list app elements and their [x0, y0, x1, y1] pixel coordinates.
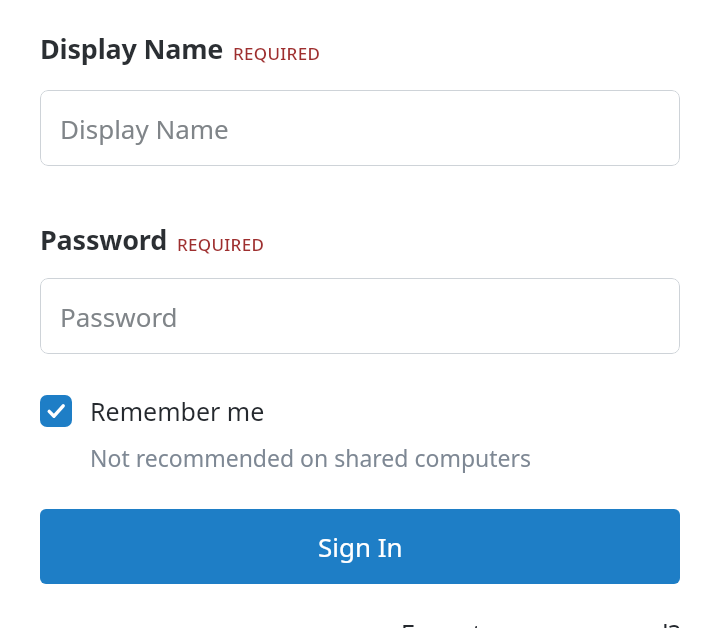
staticText: Password [60, 299, 178, 334]
staticText: Sign In [318, 529, 403, 564]
staticText: Forgot your password? [400, 615, 680, 628]
button[interactable]: Forgot your password? [400, 615, 680, 628]
staticText: Display Name [60, 111, 229, 146]
button[interactable]: Password [40, 278, 680, 354]
staticText: Password [40, 221, 168, 258]
staticText: REQUIRED [177, 233, 265, 256]
staticText: Display Name [40, 30, 224, 67]
staticText: Not recommended on shared computers [90, 442, 532, 473]
button[interactable]: Display Name [40, 90, 680, 166]
staticText: Remember me [90, 394, 265, 428]
button[interactable]: Remember me [40, 394, 265, 428]
staticText: REQUIRED [233, 42, 321, 65]
button[interactable]: Sign In [40, 509, 680, 584]
